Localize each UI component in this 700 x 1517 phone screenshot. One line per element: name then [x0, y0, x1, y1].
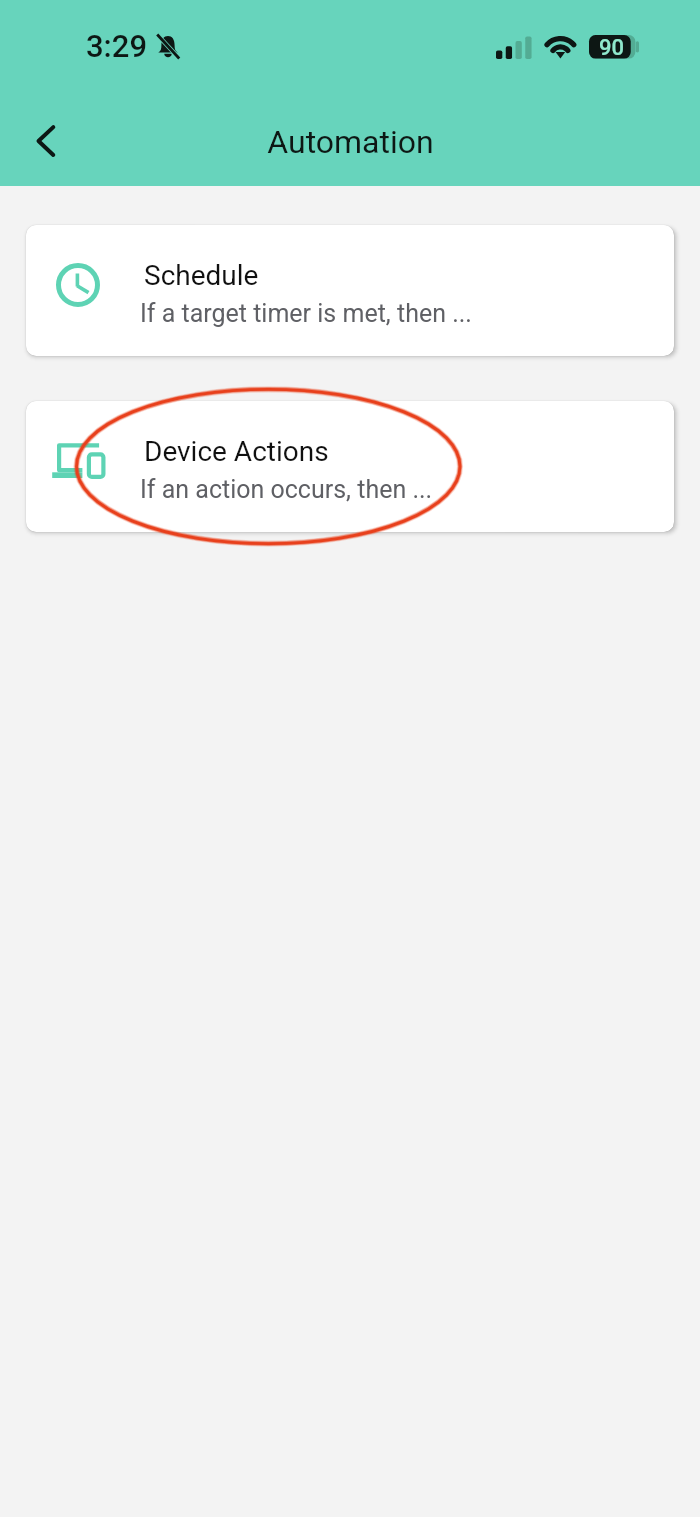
button[interactable]: Device Actions — [26, 401, 674, 532]
staticText: 90 — [599, 35, 625, 59]
staticText: If an action occurs, then ... — [140, 475, 433, 504]
staticText: Schedule — [144, 259, 259, 292]
staticText: If a target timer is met, then ... — [140, 299, 472, 328]
staticText: Device Actions — [144, 435, 329, 468]
button[interactable]: Back — [18, 114, 72, 168]
staticText: Automation — [267, 123, 434, 161]
button[interactable]: Schedule — [26, 225, 674, 356]
staticText: 3:29 — [86, 28, 148, 64]
